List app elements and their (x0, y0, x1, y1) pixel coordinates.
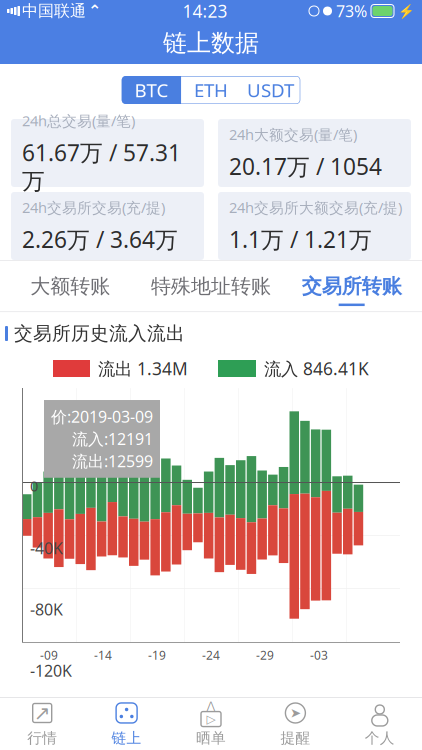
staticText: ETH (194, 78, 228, 102)
staticText: 24h交易所大额交易(充/提) (229, 198, 402, 217)
staticText: 流出:12599 (72, 450, 153, 472)
staticText: 1.1万 / 1.21万 (229, 224, 372, 254)
staticText: -29 (256, 647, 274, 663)
staticText: ➤ (290, 705, 301, 720)
staticText: -14 (94, 647, 112, 663)
staticText: -40K (30, 537, 63, 559)
staticText: 交易所转账 (302, 274, 402, 299)
staticText: 链上 (112, 729, 142, 747)
staticText: -80K (30, 599, 63, 620)
staticText: -09 (40, 647, 58, 663)
staticText: -03 (310, 647, 328, 663)
button[interactable]: USDT (241, 76, 300, 104)
staticText: 中国联通 (22, 1, 86, 21)
staticText: 流出 1.34M (98, 357, 188, 380)
staticText: 14:23 (182, 0, 227, 22)
staticText: 个人 (365, 729, 395, 747)
button[interactable]: 交易所转账 (281, 274, 422, 306)
staticText: 流入:12191 (72, 428, 153, 449)
staticText: ⚡ (398, 3, 415, 19)
staticText: 行情 (27, 729, 57, 747)
staticText: 晒单 (196, 729, 226, 747)
staticText: 24h总交易(量/笔) (22, 111, 135, 130)
staticText: ▷ (206, 712, 215, 726)
staticText: ↗ (34, 702, 51, 724)
staticText: BTC (134, 78, 168, 102)
staticText: 73% (336, 0, 367, 22)
staticText: 链上数据 (163, 28, 259, 58)
staticText: 24h交易所交易(充/提) (22, 198, 165, 217)
staticText: 20.17万 / 1054 (229, 151, 382, 181)
staticText: 交易所历史流入流出 (14, 322, 185, 345)
staticText: -19 (148, 647, 166, 663)
staticText: 价:2019-03-09 (51, 406, 153, 427)
staticText: 特殊地址转账 (151, 274, 271, 299)
staticText: 流入 846.41K (264, 357, 369, 380)
staticText: ⋀ (206, 699, 215, 711)
staticText: 大额转账 (30, 274, 110, 299)
staticText: -120K (30, 660, 72, 681)
button[interactable]: ➤ (253, 695, 338, 750)
staticText: 0 (30, 476, 38, 495)
staticText: -24 (202, 647, 220, 663)
button[interactable]: BTC (122, 76, 181, 104)
staticText: 提醒 (280, 729, 310, 747)
button[interactable]: 个人 (338, 695, 422, 750)
staticText: 24h大额交易(量/笔) (229, 125, 357, 144)
staticText: 61.67万 / 57.31万 (22, 137, 181, 195)
button[interactable]: 链上 (84, 695, 169, 750)
staticText: ⌃ (88, 2, 101, 20)
staticText: 2.26万 / 3.64万 (22, 224, 178, 254)
button[interactable]: ⋀ (169, 695, 253, 750)
button[interactable]: ↗ (0, 695, 84, 750)
button[interactable]: 大额转账 (0, 274, 141, 306)
button[interactable]: 特殊地址转账 (141, 274, 281, 306)
button[interactable]: ETH (181, 76, 241, 104)
staticText: USDT (247, 78, 294, 102)
